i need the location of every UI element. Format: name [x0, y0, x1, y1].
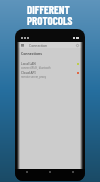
staticText: DIFFERENT PROTOCOLS [27, 3, 73, 27]
staticText: connect Wi-Fi, bluetooth [21, 66, 51, 70]
staticText: Cloud API [21, 71, 36, 75]
button[interactable]: Menu [17, 42, 83, 48]
other: Search [76, 44, 79, 47]
staticText: Local LAN [21, 62, 36, 66]
button[interactable]: Cloud API [17, 71, 83, 80]
button[interactable]: Local LAN [17, 62, 83, 71]
staticText: Connections [21, 51, 42, 56]
staticText: Connection [29, 43, 48, 48]
staticText: remote server, proxy [21, 75, 46, 79]
